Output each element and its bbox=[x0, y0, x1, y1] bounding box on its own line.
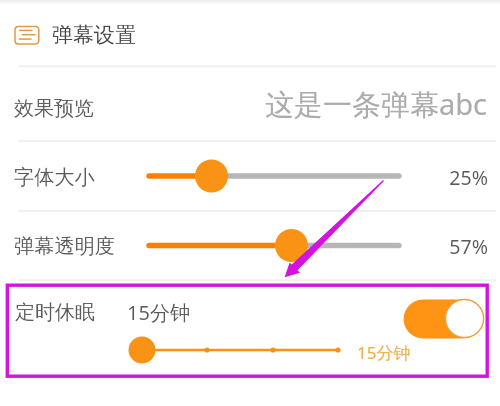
staticText: 15分钟 bbox=[357, 341, 411, 364]
staticText: 这是一条弹幕abc bbox=[265, 84, 488, 124]
button[interactable]: 字体大小 bbox=[0, 141, 500, 211]
staticText: 字体大小 bbox=[14, 165, 95, 190]
button[interactable]: 效果预览 bbox=[0, 67, 500, 141]
staticText: 57% bbox=[428, 233, 488, 260]
button[interactable]: 定时休眠 bbox=[0, 285, 500, 381]
staticText: 定时休眠 bbox=[15, 300, 95, 325]
button[interactable]: 弹幕 bbox=[0, 0, 500, 66]
button[interactable]: 弹幕透明度 bbox=[0, 211, 500, 280]
button[interactable]: 定时休眠开关 bbox=[403, 298, 484, 338]
staticText: 弹幕透明度 bbox=[14, 234, 115, 259]
staticText: 15分钟 bbox=[127, 299, 190, 326]
staticText: 弹幕设置 bbox=[52, 22, 136, 48]
staticText: 效果预览 bbox=[14, 96, 94, 121]
other: 弹幕 bbox=[14, 26, 39, 44]
staticText: 25% bbox=[428, 164, 488, 191]
